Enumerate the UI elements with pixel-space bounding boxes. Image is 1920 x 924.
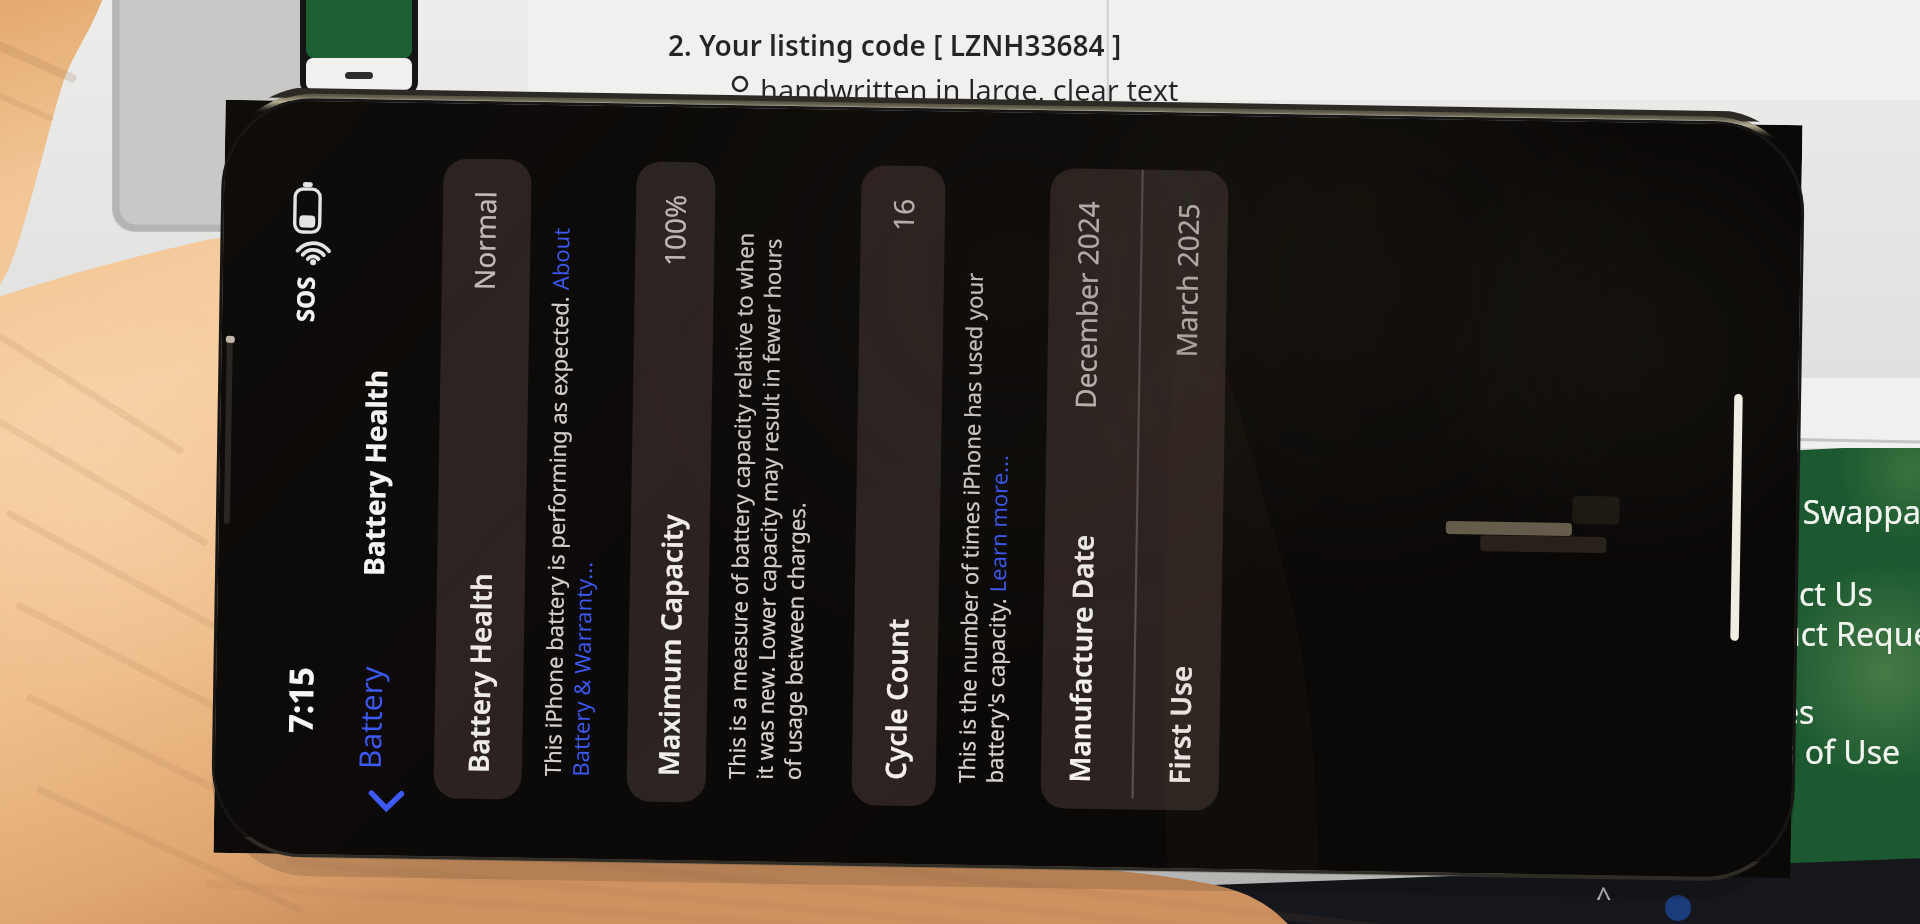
button[interactable]: Back to Battery (325, 640, 391, 810)
button[interactable]: Battery Health — Normal (216, 160, 308, 800)
button[interactable]: Learn more about battery capacity (980, 430, 1030, 540)
button[interactable]: First Use — March 2025 (912, 182, 1004, 812)
button[interactable]: Manufacture Date — December 2024 (822, 178, 912, 808)
button[interactable]: Maximum Capacity — 100% (408, 168, 492, 808)
button[interactable]: About Battery and Warranty (520, 618, 582, 738)
button[interactable]: Cycle Count — 16 (633, 168, 721, 808)
